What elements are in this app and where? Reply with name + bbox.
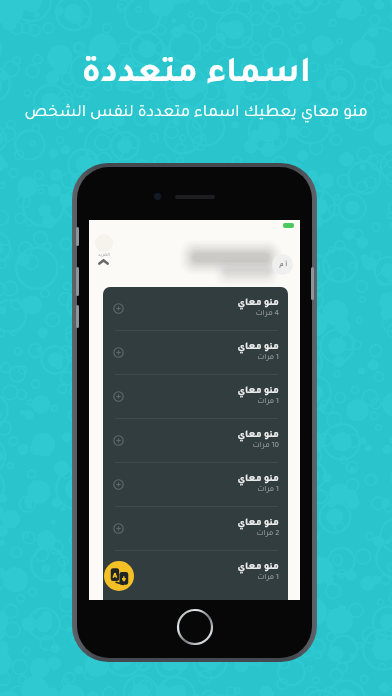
button[interactable]: منو معاي — [103, 419, 288, 462]
staticText: 1 مرات — [257, 486, 279, 494]
staticText: منو معاي — [237, 475, 279, 485]
button[interactable]: منو معاي — [103, 551, 288, 594]
staticText: منو معاي — [237, 387, 279, 397]
button[interactable]: More — [93, 252, 114, 266]
staticText: منو معاي — [237, 519, 279, 529]
staticText: 1 مرات — [257, 354, 279, 362]
button[interactable]: منو معاي — [103, 287, 288, 330]
staticText: منو معاي — [237, 343, 279, 353]
staticText: 10 مرات — [252, 442, 279, 450]
staticText: اسماء متعددة — [81, 58, 311, 94]
staticText: منو معاي — [237, 431, 279, 441]
button[interactable]: منو معاي — [103, 375, 288, 418]
staticText: منو معاي يعطيك اسماء متعددة لنفس الشخص — [24, 105, 368, 122]
staticText: أ م — [279, 261, 287, 268]
staticText: 1 مرات — [257, 574, 279, 582]
staticText: المزيد — [97, 253, 110, 258]
button[interactable]: Profile — [272, 254, 293, 275]
staticText: 4 مرات — [255, 310, 279, 318]
button[interactable]: منو معاي — [103, 463, 288, 506]
button[interactable]: Translate — [104, 561, 134, 591]
staticText: منو معاي — [237, 563, 279, 573]
button[interactable]: منو معاي — [103, 507, 288, 550]
staticText: 2 مرات — [256, 530, 279, 538]
staticText: 1 مرات — [257, 398, 279, 406]
button[interactable]: منو معاي — [103, 331, 288, 374]
staticText: منو معاي — [237, 299, 279, 309]
